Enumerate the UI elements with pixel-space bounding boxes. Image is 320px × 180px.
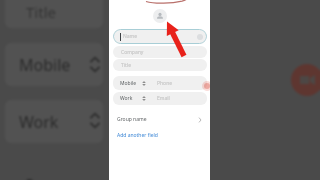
staticText: Phone <box>157 80 173 87</box>
staticText: Work <box>120 95 133 102</box>
staticText: Work <box>19 111 59 133</box>
staticText: Title <box>26 2 56 22</box>
staticText: Title <box>121 62 131 69</box>
staticText: Add another field <box>117 132 158 139</box>
button[interactable]: Name <box>113 29 207 44</box>
staticText: Company <box>121 49 144 56</box>
staticText: Email <box>157 95 170 102</box>
staticText: Mobile <box>120 80 137 87</box>
button[interactable]: Title <box>113 59 207 71</box>
button[interactable]: Mobile <box>113 76 207 90</box>
button[interactable]: Work <box>113 92 207 105</box>
staticText: Gr <box>23 173 41 180</box>
button[interactable]: Add photo <box>153 9 167 23</box>
button[interactable]: Group name <box>109 112 210 127</box>
button[interactable]: Company <box>113 46 207 58</box>
button[interactable]: Add another field <box>117 130 158 140</box>
staticText: Mobile <box>19 54 71 76</box>
staticText: Group name <box>117 116 147 123</box>
staticText: Name <box>123 33 138 40</box>
